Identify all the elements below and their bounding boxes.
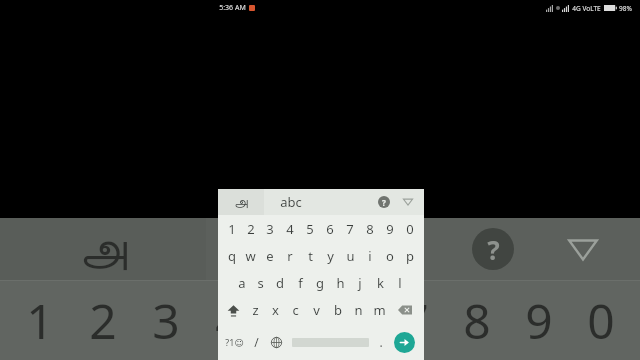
button[interactable]: e: [260, 242, 280, 269]
button[interactable]: 6: [320, 215, 340, 242]
staticText: 7: [346, 220, 354, 238]
staticText: 4: [215, 288, 243, 353]
button[interactable]: u: [340, 242, 360, 269]
button[interactable]: b: [327, 296, 348, 324]
button[interactable]: y: [320, 242, 340, 269]
staticText: ?1☺: [225, 336, 244, 348]
button[interactable]: Hide keyboard: [399, 193, 417, 211]
button[interactable]: s: [251, 269, 270, 296]
staticText: s: [257, 274, 264, 292]
button[interactable]: n: [348, 296, 369, 324]
button[interactable]: Shift: [222, 296, 245, 324]
button[interactable]: abc: [264, 189, 318, 215]
button[interactable]: 2: [241, 215, 260, 242]
button[interactable]: v: [306, 296, 327, 324]
button[interactable]: a: [232, 269, 251, 296]
button[interactable]: 4: [197, 281, 260, 360]
staticText: t: [308, 247, 313, 265]
button[interactable]: abc: [206, 218, 381, 280]
button[interactable]: 3: [260, 215, 280, 242]
button[interactable]: Space: [287, 324, 373, 360]
button[interactable]: /: [248, 324, 265, 360]
button[interactable]: g: [310, 269, 330, 296]
button[interactable]: p: [400, 242, 420, 269]
staticText: 2: [89, 288, 117, 353]
button[interactable]: Backspace: [390, 296, 420, 324]
staticText: z: [252, 301, 259, 319]
staticText: n: [354, 301, 363, 319]
button[interactable]: o: [380, 242, 400, 269]
button[interactable]: 8: [446, 281, 508, 360]
button[interactable]: 1: [222, 215, 241, 242]
button[interactable]: Enter: [388, 324, 421, 360]
button[interactable]: 7: [384, 281, 446, 360]
staticText: 1: [228, 220, 236, 238]
button[interactable]: 5: [260, 281, 322, 360]
staticText: 5: [277, 288, 305, 353]
staticText: q: [228, 247, 236, 265]
button[interactable]: அ: [218, 189, 264, 215]
staticText: 4: [286, 220, 294, 238]
button[interactable]: 7: [340, 215, 360, 242]
staticText: u: [346, 247, 355, 265]
button[interactable]: x: [265, 296, 285, 324]
staticText: ?: [487, 232, 500, 267]
button[interactable]: w: [241, 242, 260, 269]
button[interactable]: h: [330, 269, 350, 296]
staticText: 98%: [619, 4, 632, 13]
button[interactable]: j: [350, 269, 370, 296]
staticText: l: [398, 274, 402, 292]
staticText: abc: [255, 218, 332, 280]
staticText: 8: [366, 220, 374, 238]
staticText: .: [379, 334, 383, 350]
button[interactable]: Hide keyboard: [560, 226, 606, 272]
staticText: d: [276, 274, 284, 292]
button[interactable]: Change language: [265, 324, 287, 360]
staticText: 9: [525, 288, 553, 353]
staticText: 0: [587, 288, 615, 353]
staticText: 5: [306, 220, 314, 238]
button[interactable]: 9: [508, 281, 570, 360]
staticText: 3: [266, 220, 274, 238]
button[interactable]: l: [390, 269, 410, 296]
staticText: m: [373, 301, 386, 319]
button[interactable]: .: [373, 324, 388, 360]
staticText: அ: [79, 226, 127, 272]
button[interactable]: ?1☺: [221, 324, 248, 360]
button[interactable]: 9: [380, 215, 400, 242]
button[interactable]: அ: [0, 218, 206, 280]
button[interactable]: c: [285, 296, 306, 324]
button[interactable]: 2: [71, 281, 134, 360]
button[interactable]: Help: [374, 192, 394, 212]
button[interactable]: 4: [280, 215, 300, 242]
staticText: /: [254, 334, 259, 350]
staticText: ?: [382, 197, 386, 208]
staticText: a: [238, 274, 246, 292]
button[interactable]: z: [245, 296, 265, 324]
button[interactable]: k: [370, 269, 390, 296]
staticText: o: [386, 247, 394, 265]
staticText: r: [287, 247, 293, 265]
button[interactable]: m: [369, 296, 390, 324]
button[interactable]: Help: [466, 222, 520, 276]
button[interactable]: f: [290, 269, 310, 296]
staticText: x: [272, 301, 279, 319]
button[interactable]: t: [300, 242, 320, 269]
staticText: i: [368, 247, 372, 265]
button[interactable]: 1: [8, 281, 71, 360]
button[interactable]: q: [222, 242, 241, 269]
staticText: 9: [386, 220, 394, 238]
staticText: h: [336, 274, 345, 292]
staticText: f: [298, 274, 303, 292]
button[interactable]: 0: [400, 215, 420, 242]
button[interactable]: 0: [570, 281, 632, 360]
button[interactable]: 3: [134, 281, 197, 360]
button[interactable]: r: [280, 242, 300, 269]
button[interactable]: 5: [300, 215, 320, 242]
button[interactable]: 8: [360, 215, 380, 242]
staticText: v: [313, 301, 320, 319]
staticText: 6: [339, 288, 367, 353]
button[interactable]: i: [360, 242, 380, 269]
button[interactable]: d: [270, 269, 290, 296]
button[interactable]: 6: [322, 281, 384, 360]
